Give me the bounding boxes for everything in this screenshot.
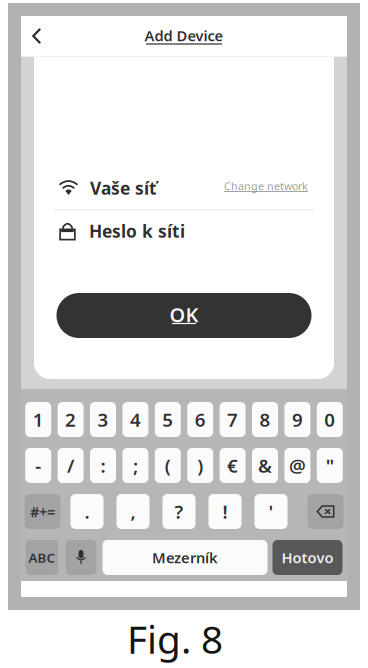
button[interactable]: 1	[25, 402, 51, 437]
staticText: Fig. 8	[127, 613, 223, 664]
button[interactable]: 9	[284, 402, 310, 437]
button[interactable]: 3	[90, 402, 116, 437]
staticText: €	[227, 453, 238, 478]
staticText: 2	[65, 407, 76, 432]
button[interactable]: :	[90, 448, 116, 483]
button[interactable]: ABC	[25, 540, 58, 575]
button[interactable]: -	[25, 448, 51, 483]
staticText: OK	[169, 301, 198, 328]
button[interactable]: 8	[252, 402, 278, 437]
staticText: 6	[195, 407, 206, 432]
staticText: /	[67, 453, 74, 478]
staticText: ?	[174, 499, 183, 524]
button[interactable]: "	[317, 448, 343, 483]
button[interactable]: (	[155, 448, 181, 483]
button[interactable]: Back	[21, 16, 53, 56]
button[interactable]: !	[208, 494, 241, 529]
button[interactable]: 2	[58, 402, 84, 437]
button[interactable]: Delete	[307, 494, 343, 529]
staticText: :	[100, 453, 105, 478]
staticText: 0	[324, 407, 335, 432]
button[interactable]: /	[58, 448, 84, 483]
button[interactable]: 4	[122, 402, 148, 437]
staticText: 5	[162, 407, 173, 432]
staticText: @	[289, 453, 306, 478]
staticText: 3	[97, 407, 108, 432]
staticText: ,	[130, 499, 135, 524]
staticText: 8	[259, 407, 270, 432]
button[interactable]: ,	[116, 494, 149, 529]
staticText: &	[258, 453, 272, 478]
button[interactable]: Hotovo	[272, 540, 342, 575]
staticText: 4	[130, 407, 141, 432]
staticText: ;	[133, 453, 138, 478]
staticText: -	[35, 453, 41, 478]
staticText: Heslo k síti	[89, 219, 185, 242]
staticText: 1	[33, 407, 44, 432]
button[interactable]: )	[187, 448, 213, 483]
staticText: )	[197, 453, 203, 478]
staticText: Mezerník	[152, 548, 218, 567]
staticText: "	[326, 453, 334, 478]
staticText: Change network	[224, 179, 308, 193]
button[interactable]: Dictate	[65, 540, 96, 575]
button[interactable]: €	[220, 448, 246, 483]
staticText: .	[84, 499, 89, 524]
staticText: #+=	[30, 502, 55, 521]
button[interactable]: 5	[155, 402, 181, 437]
staticText: (	[165, 453, 171, 478]
button[interactable]: '	[254, 494, 287, 529]
staticText: Vaše síť	[90, 176, 157, 199]
staticText: 9	[292, 407, 303, 432]
button[interactable]: .	[70, 494, 103, 529]
button[interactable]: @	[284, 448, 310, 483]
button[interactable]: ;	[122, 448, 148, 483]
staticText: Add Device	[144, 26, 223, 45]
staticText: 7	[227, 407, 238, 432]
button[interactable]: OK	[56, 293, 311, 338]
staticText: !	[222, 499, 227, 524]
button[interactable]: #+=	[24, 494, 60, 529]
staticText: '	[268, 499, 273, 524]
staticText: Hotovo	[281, 548, 333, 567]
button[interactable]: ?	[162, 494, 195, 529]
button[interactable]: 7	[220, 402, 246, 437]
button[interactable]: Mezerník	[102, 540, 267, 575]
button[interactable]: Change network	[223, 177, 309, 199]
button[interactable]: 6	[187, 402, 213, 437]
button[interactable]: &	[252, 448, 278, 483]
staticText: ABC	[28, 549, 55, 566]
button[interactable]: 0	[317, 402, 343, 437]
